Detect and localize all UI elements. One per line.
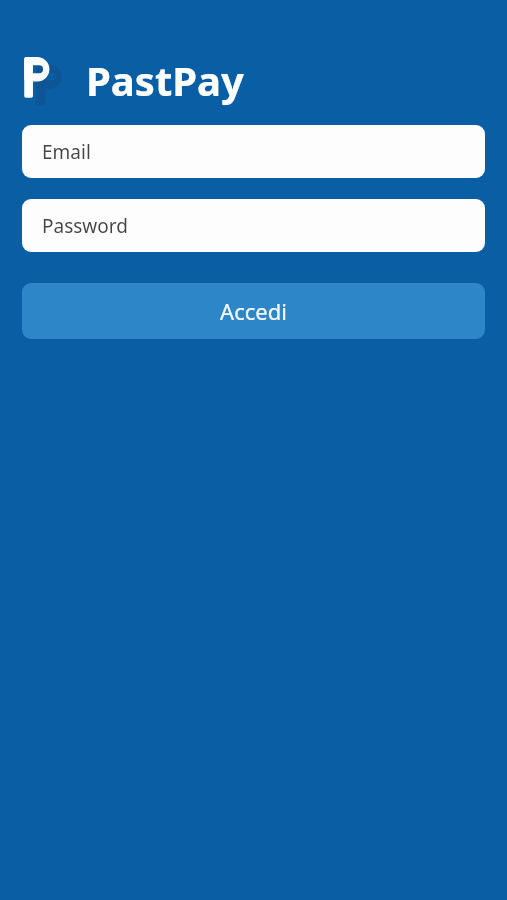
staticText: Email [42,139,91,165]
staticText: Password [42,213,128,239]
staticText: PastPay [86,53,244,107]
button[interactable]: Password [22,199,485,252]
button[interactable]: Email [22,125,485,178]
staticText: Accedi [220,296,287,326]
button[interactable]: Accedi [22,283,485,339]
